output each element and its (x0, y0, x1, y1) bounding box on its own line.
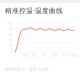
staticText: 0 (11, 50, 13, 54)
staticText: 60 (33, 54, 37, 58)
staticText: 80 (9, 27, 13, 31)
staticText: 150 (61, 54, 67, 58)
staticText: 180 (71, 54, 77, 58)
staticText: 0 (14, 54, 16, 58)
staticText: 120 (51, 54, 57, 58)
staticText: 20 (9, 45, 13, 48)
staticText: 采样间隔 5s · 最近 3 分钟 (5, 66, 49, 72)
staticText: 精准控温·温度曲线 (5, 6, 63, 15)
staticText: 100 (7, 22, 13, 25)
staticText: 30 (23, 54, 27, 58)
staticText: 60 (9, 33, 13, 37)
staticText: 40 (9, 39, 13, 42)
staticText: 90 (42, 54, 46, 58)
